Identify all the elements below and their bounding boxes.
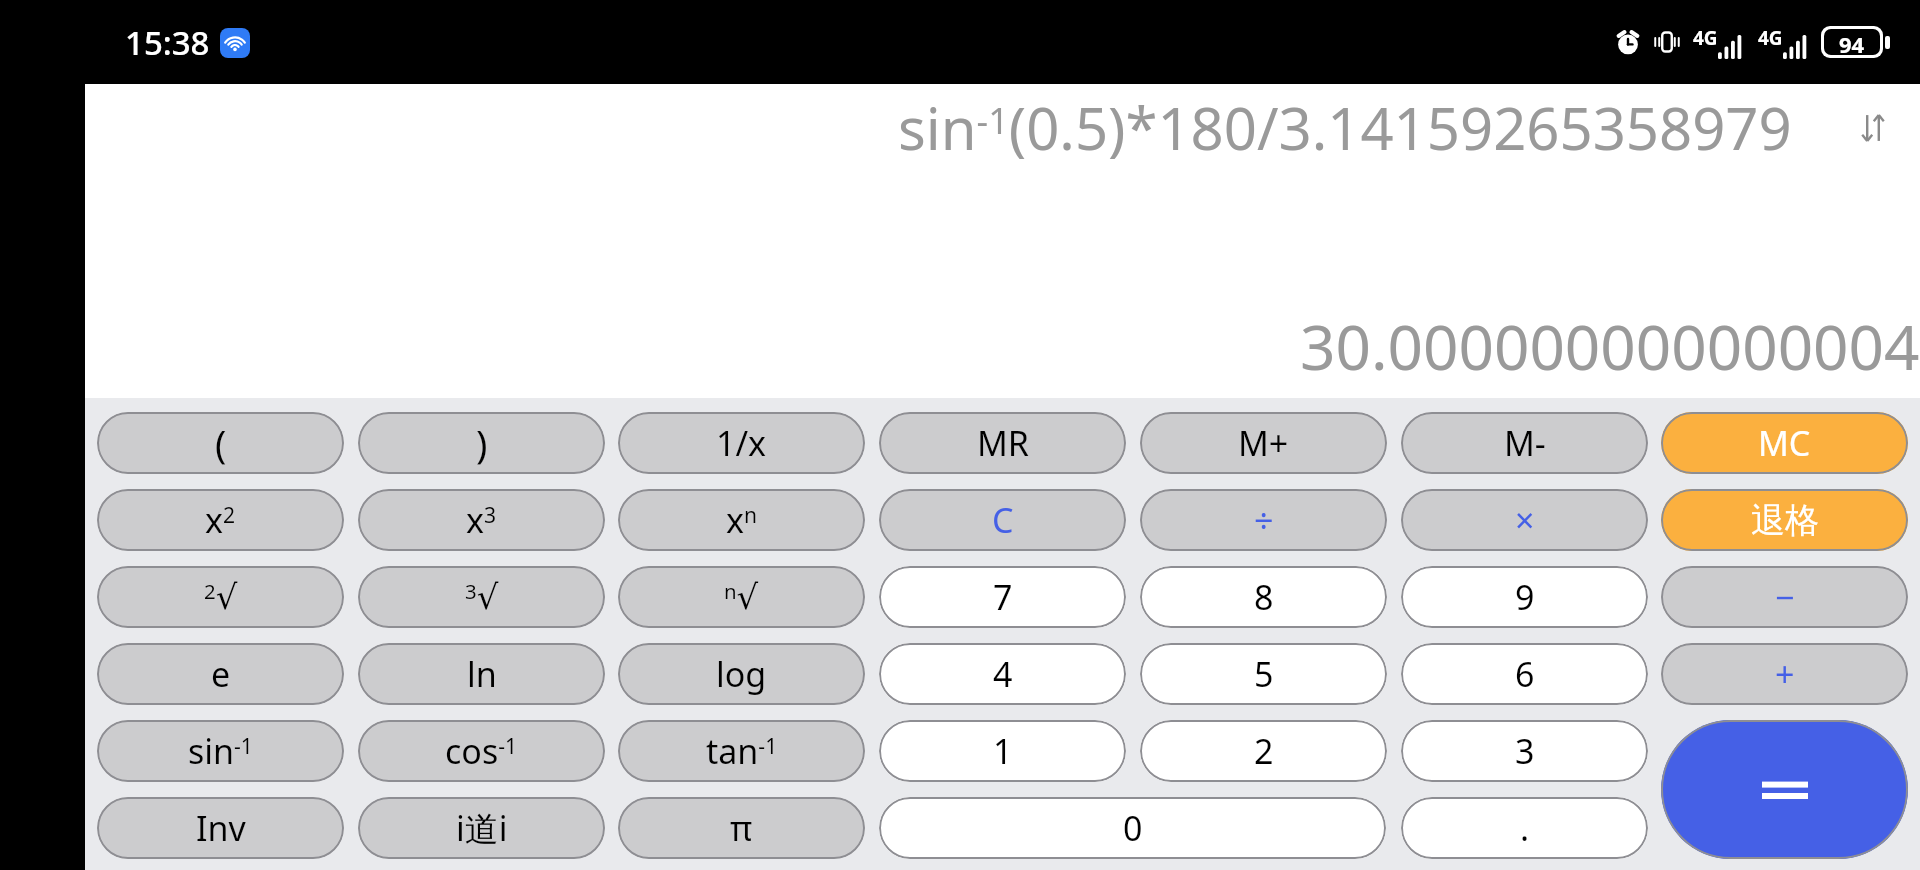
staticText: 94 xyxy=(1839,29,1865,55)
staticText: 2 xyxy=(1254,728,1274,774)
staticText: 0 xyxy=(1123,805,1143,851)
button[interactable]: tan-1 xyxy=(618,720,865,782)
button[interactable]: 8 xyxy=(1140,566,1387,628)
button[interactable]: 2 xyxy=(1140,720,1387,782)
staticText: Inv xyxy=(196,805,246,851)
button[interactable]: 1 xyxy=(879,720,1126,782)
button[interactable]: 9 xyxy=(1401,566,1648,628)
staticText: − xyxy=(1775,574,1795,620)
staticText: . xyxy=(1520,805,1530,851)
staticText: ( xyxy=(215,417,227,469)
button[interactable]: xn xyxy=(618,489,865,551)
button[interactable]: sin-1 xyxy=(97,720,344,782)
staticText: e xyxy=(211,651,231,697)
button[interactable]: cos-1 xyxy=(358,720,605,782)
staticText: sin-1 xyxy=(188,728,253,774)
staticText: 15:38 xyxy=(125,20,210,65)
button[interactable]: ( xyxy=(97,412,344,474)
staticText: ÷ xyxy=(1254,497,1274,543)
button[interactable]: e xyxy=(97,643,344,705)
staticText: 4 xyxy=(993,651,1013,697)
button[interactable]: MR xyxy=(879,412,1126,474)
button[interactable]: 3√ xyxy=(358,566,605,628)
button[interactable]: ln xyxy=(358,643,605,705)
staticText: n√ xyxy=(724,577,759,617)
staticText: 7 xyxy=(993,574,1013,620)
button[interactable]: + xyxy=(1661,643,1908,705)
button[interactable]: − xyxy=(1661,566,1908,628)
staticText: 5 xyxy=(1254,651,1274,697)
button[interactable]: ÷ xyxy=(1140,489,1387,551)
button[interactable]: n√ xyxy=(618,566,865,628)
button[interactable]: C xyxy=(879,489,1126,551)
button[interactable]: 3 xyxy=(1401,720,1648,782)
staticText: 6 xyxy=(1515,651,1535,697)
staticText: 30.000000000000004 xyxy=(1300,304,1920,388)
staticText: sin-1(0.5)*180/3.14159265358979 xyxy=(898,88,1792,167)
staticText: cos-1 xyxy=(445,728,518,774)
staticText: ) xyxy=(476,417,488,469)
staticText: 4G xyxy=(1758,25,1783,51)
staticText: 4G xyxy=(1693,25,1718,51)
button[interactable]: 6 xyxy=(1401,643,1648,705)
staticText: C xyxy=(992,497,1014,543)
button[interactable]: . xyxy=(1401,797,1648,859)
staticText: log xyxy=(716,651,767,697)
staticText: ln xyxy=(467,651,497,697)
button[interactable]: 0 xyxy=(879,797,1386,859)
staticText: i道i xyxy=(456,805,508,851)
staticText: M- xyxy=(1504,420,1546,466)
button[interactable]: 7 xyxy=(879,566,1126,628)
button[interactable] xyxy=(1661,720,1908,859)
staticText: 1 xyxy=(993,728,1013,774)
staticText: xn xyxy=(726,497,758,543)
button[interactable]: log xyxy=(618,643,865,705)
button[interactable]: M+ xyxy=(1140,412,1387,474)
staticText: x3 xyxy=(466,497,497,543)
button[interactable]: i道i xyxy=(358,797,605,859)
button[interactable]: π xyxy=(618,797,865,859)
button[interactable]: 4 xyxy=(879,643,1126,705)
staticText: π xyxy=(730,805,753,851)
button[interactable]: 1/x xyxy=(618,412,865,474)
staticText: 退格 xyxy=(1751,499,1819,542)
button[interactable]: 5 xyxy=(1140,643,1387,705)
staticText: 9 xyxy=(1515,574,1535,620)
button[interactable]: ) xyxy=(358,412,605,474)
button[interactable]: x3 xyxy=(358,489,605,551)
button[interactable]: x2 xyxy=(97,489,344,551)
staticText: × xyxy=(1515,497,1535,543)
staticText: tan-1 xyxy=(706,728,778,774)
staticText: 3 xyxy=(1515,728,1535,774)
button[interactable]: MC xyxy=(1661,412,1908,474)
staticText: MR xyxy=(977,420,1029,466)
staticText: 3√ xyxy=(465,577,499,617)
staticText: x2 xyxy=(205,497,236,543)
staticText: 1/x xyxy=(716,420,767,466)
button[interactable]: 退格 xyxy=(1661,489,1908,551)
button[interactable]: Inv xyxy=(97,797,344,859)
staticText: + xyxy=(1775,651,1795,697)
staticText: 2√ xyxy=(204,577,238,617)
button[interactable]: M- xyxy=(1401,412,1648,474)
staticText: 8 xyxy=(1254,574,1274,620)
button[interactable]: 2√ xyxy=(97,566,344,628)
button[interactable]: × xyxy=(1401,489,1648,551)
button[interactable]: Swap xyxy=(1844,99,1902,157)
staticText: MC xyxy=(1758,420,1811,466)
staticText: M+ xyxy=(1238,420,1289,466)
